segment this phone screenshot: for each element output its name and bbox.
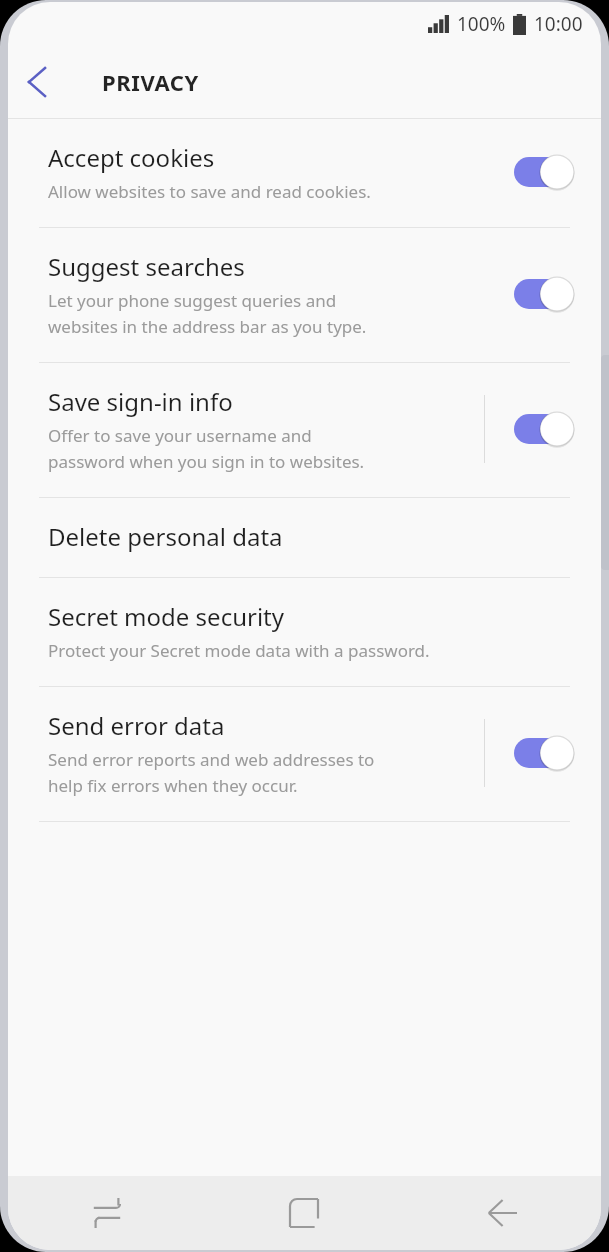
button[interactable]: Back: [8, 53, 66, 111]
button[interactable]: Suggest searches: [8, 228, 601, 362]
button[interactable]: Send error data: [8, 687, 601, 821]
staticText: Let your phone suggest queries and websi…: [48, 289, 367, 338]
staticText: Send error data: [48, 709, 225, 742]
staticText: Protect your Secret mode data with a pas…: [48, 639, 430, 662]
button[interactable]: Save sign-in info: [8, 363, 601, 497]
button[interactable]: Toggle on: [513, 734, 575, 772]
staticText: Accept cookies: [48, 141, 215, 174]
staticText: PRIVACY: [102, 67, 199, 97]
staticText: Secret mode security: [48, 600, 284, 633]
button[interactable]: Secret mode security: [8, 578, 601, 686]
button[interactable]: Toggle on: [513, 153, 575, 191]
button[interactable]: Back: [403, 1176, 601, 1250]
button[interactable]: Accept cookies: [8, 119, 601, 227]
button[interactable]: Toggle on: [513, 410, 575, 448]
staticText: Save sign-in info: [48, 385, 233, 418]
staticText: Delete personal data: [48, 520, 283, 553]
button[interactable]: Delete personal data: [8, 498, 601, 577]
staticText: Suggest searches: [48, 250, 245, 283]
staticText: 100%: [457, 11, 506, 37]
staticText: 10:00: [534, 11, 583, 37]
staticText: Send error reports and web addresses to …: [48, 748, 375, 797]
button[interactable]: Recents: [8, 1176, 205, 1250]
button[interactable]: Home: [205, 1176, 403, 1250]
button[interactable]: Toggle on: [513, 275, 575, 313]
staticText: Offer to save your username and password…: [48, 424, 365, 473]
staticText: Allow websites to save and read cookies.: [48, 180, 371, 203]
